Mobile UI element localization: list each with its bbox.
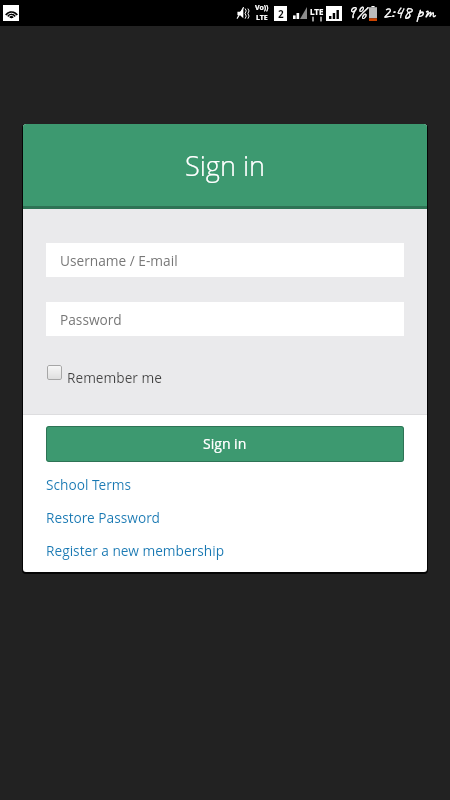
button[interactable]: Restore Password: [46, 508, 160, 527]
button[interactable]: Password: [46, 302, 404, 336]
staticText: LTE: [256, 13, 268, 23]
staticText: School Terms: [46, 475, 132, 494]
button[interactable]: Register a new membership: [46, 541, 225, 560]
staticText: LTE: [310, 6, 324, 17]
staticText: 2:48 pm: [382, 0, 435, 24]
staticText: Sign in: [203, 434, 247, 453]
staticText: Register a new membership: [46, 541, 225, 560]
staticText: Vo)): [255, 3, 269, 13]
staticText: 2: [278, 7, 284, 21]
button[interactable]: School Terms: [46, 475, 132, 494]
button[interactable]: Sign in: [46, 426, 404, 462]
staticText: Sign in: [185, 147, 265, 184]
button[interactable]: Username / E-mail: [46, 243, 404, 277]
staticText: Password: [60, 310, 122, 329]
other: Wi-Fi connected: [3, 5, 19, 21]
staticText: Restore Password: [46, 508, 160, 527]
button[interactable]: Remember me: [46, 364, 162, 386]
staticText: Username / E-mail: [60, 251, 178, 270]
staticText: 9%: [347, 0, 367, 24]
staticText: Remember me: [67, 368, 162, 387]
